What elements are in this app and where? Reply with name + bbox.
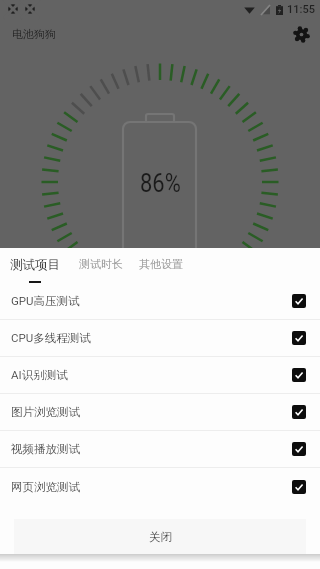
button[interactable]: 测试项目 — [10, 248, 60, 283]
button[interactable]: 图片浏览测试 — [0, 394, 320, 430]
staticText: AI识别测试 — [11, 368, 68, 382]
button[interactable]: CPU多线程测试 — [0, 320, 320, 356]
button[interactable]: 测试时长 — [79, 248, 123, 282]
button[interactable]: GPU高压测试 — [0, 283, 320, 319]
button[interactable]: 关闭 — [14, 519, 306, 554]
staticText: 图片浏览测试 — [11, 405, 80, 419]
button[interactable]: Settings — [282, 15, 320, 53]
staticText: 网页浏览测试 — [11, 480, 80, 494]
staticText: CPU多线程测试 — [11, 331, 91, 345]
staticText: 测试时长 — [79, 257, 123, 271]
staticText: 关闭 — [149, 530, 172, 544]
button[interactable]: AI识别测试 — [0, 357, 320, 393]
staticText: 视频播放测试 — [11, 442, 80, 456]
staticText: 86% — [140, 168, 181, 198]
staticText: 测试项目 — [10, 257, 60, 273]
staticText: 其他设置 — [139, 257, 183, 271]
staticText: 电池狗狗 — [12, 27, 56, 41]
button[interactable]: 其他设置 — [139, 248, 183, 282]
button[interactable]: 视频播放测试 — [0, 431, 320, 467]
staticText: GPU高压测试 — [11, 294, 80, 308]
button[interactable]: 网页浏览测试 — [0, 468, 320, 505]
staticText: 11:55 — [287, 3, 315, 16]
